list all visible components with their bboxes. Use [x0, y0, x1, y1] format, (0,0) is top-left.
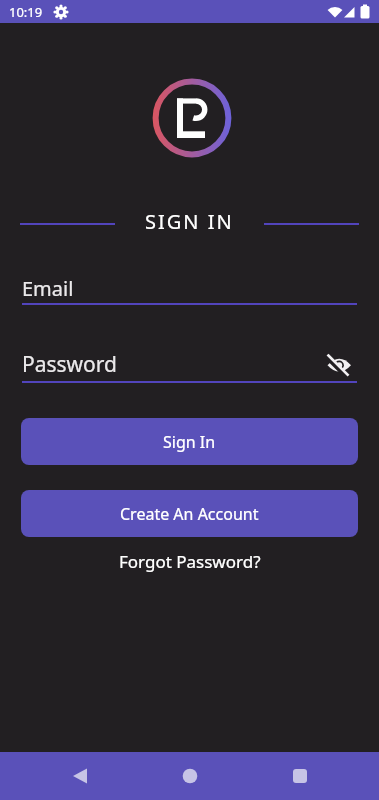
staticText: Create An Account	[120, 503, 259, 525]
staticText: 10:19	[9, 3, 43, 21]
staticText: Password	[22, 350, 326, 379]
button[interactable]	[326, 353, 352, 377]
button[interactable]	[56, 752, 104, 800]
staticText: SIGN IN	[145, 208, 234, 235]
button[interactable]: Create An Account	[21, 490, 358, 537]
button[interactable]: Email	[22, 275, 357, 305]
button[interactable]: Forgot Password?	[119, 550, 261, 573]
button[interactable]	[166, 752, 214, 800]
button[interactable]	[276, 752, 324, 800]
button[interactable]: Password	[22, 350, 357, 383]
staticText: Sign In	[163, 431, 216, 453]
staticText: Email	[22, 275, 74, 302]
button[interactable]: Sign In	[21, 418, 358, 465]
